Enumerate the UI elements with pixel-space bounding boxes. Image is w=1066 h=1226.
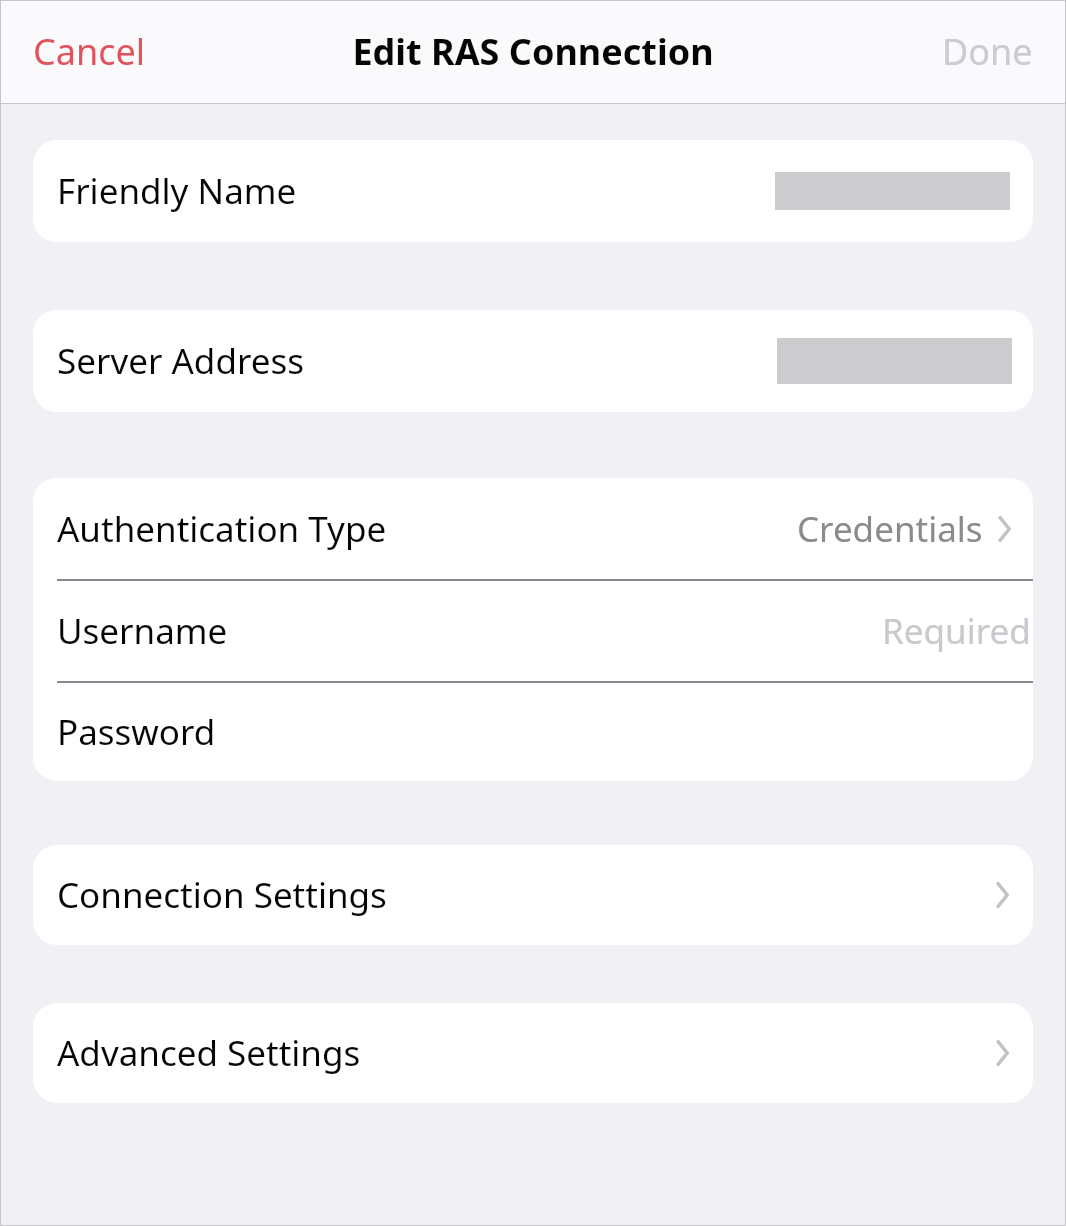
button[interactable]: Friendly Name [33, 140, 1033, 242]
button[interactable]: Done [927, 17, 1048, 86]
staticText: Username [57, 607, 228, 655]
button[interactable]: Server Address [33, 310, 1033, 412]
button[interactable]: Advanced Settings [33, 1003, 1033, 1103]
staticText: Cancel [33, 27, 146, 76]
staticText: Connection Settings [57, 871, 387, 919]
staticText: Server Address [57, 337, 304, 385]
staticText: Credentials [797, 505, 983, 553]
staticText: Edit RAS Connection [352, 27, 714, 76]
button[interactable]: Password [33, 683, 1033, 781]
staticText: Advanced Settings [57, 1029, 361, 1077]
staticText: Required [882, 607, 1031, 655]
staticText: Authentication Type [57, 505, 387, 553]
button[interactable]: Authentication Type [33, 478, 1033, 579]
button[interactable]: Username [33, 581, 1033, 681]
staticText: Done [942, 27, 1033, 76]
button[interactable]: Connection Settings [33, 845, 1033, 945]
staticText: Password [57, 708, 216, 756]
staticText: Friendly Name [57, 167, 297, 215]
button[interactable]: Cancel [18, 17, 161, 86]
